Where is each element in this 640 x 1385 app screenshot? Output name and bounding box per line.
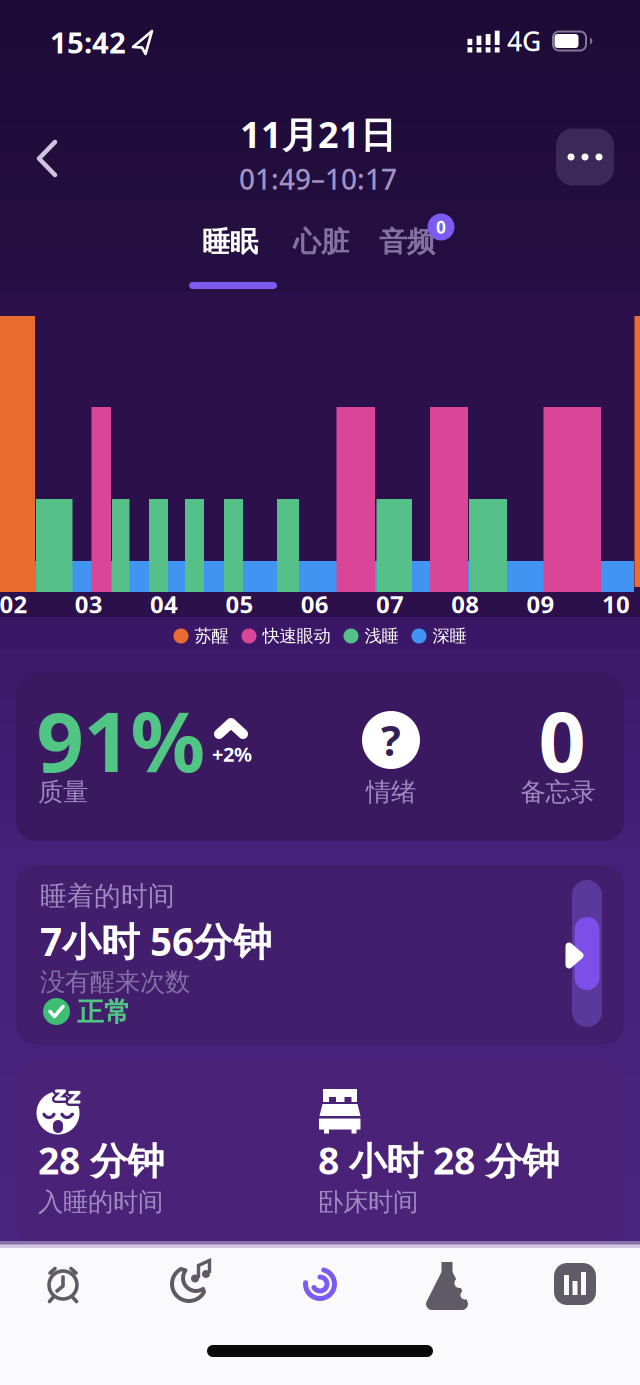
staticText: 卧床时间 bbox=[318, 1186, 418, 1217]
staticText: 05 bbox=[225, 588, 253, 620]
staticText: 10 bbox=[602, 588, 630, 620]
staticText: 11月21日 bbox=[240, 110, 396, 158]
staticText: 15:42 bbox=[50, 22, 126, 61]
button[interactable]: Back bbox=[19, 130, 75, 186]
staticText: 睡着的时间 bbox=[40, 880, 175, 912]
staticText: 入睡的时间 bbox=[38, 1186, 163, 1217]
staticText: 音频 bbox=[379, 225, 435, 259]
button[interactable]: 睡眠辅助 bbox=[145, 1249, 235, 1319]
staticText: 01:49–10:17 bbox=[239, 160, 397, 198]
staticText: 08 bbox=[451, 588, 479, 620]
staticText: 正常 bbox=[77, 996, 131, 1028]
staticText: 心脏 bbox=[293, 225, 349, 259]
staticText: 没有醒来次数 bbox=[40, 966, 190, 997]
button[interactable]: 统计 bbox=[530, 1249, 620, 1319]
button[interactable]: 睡眠 bbox=[275, 1249, 365, 1319]
staticText: 情绪 bbox=[366, 776, 416, 807]
staticText: 7小时 56分钟 bbox=[40, 915, 272, 967]
staticText: 8 小时 28 分钟 bbox=[318, 1135, 559, 1185]
staticText: 28 分钟 bbox=[38, 1135, 164, 1185]
staticText: 02 bbox=[0, 588, 27, 620]
staticText: 质量 bbox=[38, 776, 88, 807]
staticText: 睡眠 bbox=[202, 225, 258, 259]
button[interactable]: 展开 bbox=[572, 880, 602, 1027]
staticText: 03 bbox=[75, 588, 103, 620]
staticText: 深睡 bbox=[432, 625, 466, 647]
button[interactable]: 心脏 bbox=[293, 225, 349, 259]
staticText: 91% bbox=[36, 685, 205, 795]
staticText: 04 bbox=[150, 588, 178, 620]
staticText: 0 bbox=[538, 685, 585, 795]
button[interactable]: More bbox=[556, 128, 614, 185]
staticText: +2% bbox=[212, 741, 252, 767]
staticText: 09 bbox=[527, 588, 555, 620]
staticText: 浅睡 bbox=[364, 625, 398, 647]
staticText: ? bbox=[381, 713, 401, 767]
staticText: 快速眼动 bbox=[262, 625, 330, 647]
button[interactable]: 睡眠 bbox=[202, 225, 258, 259]
button[interactable]: 白噪音 bbox=[402, 1249, 492, 1319]
button[interactable]: 睡着的时间 bbox=[16, 865, 624, 1045]
button[interactable]: 音频 bbox=[379, 225, 435, 259]
button[interactable]: 闹钟 bbox=[18, 1249, 108, 1319]
staticText: 07 bbox=[376, 588, 404, 620]
staticText: 0 bbox=[436, 215, 446, 238]
staticText: 06 bbox=[301, 588, 329, 620]
button[interactable]: 情绪 bbox=[362, 711, 420, 769]
staticText: 苏醒 bbox=[194, 625, 228, 647]
staticText: 备忘录 bbox=[520, 776, 595, 807]
staticText: 4G bbox=[507, 23, 541, 59]
